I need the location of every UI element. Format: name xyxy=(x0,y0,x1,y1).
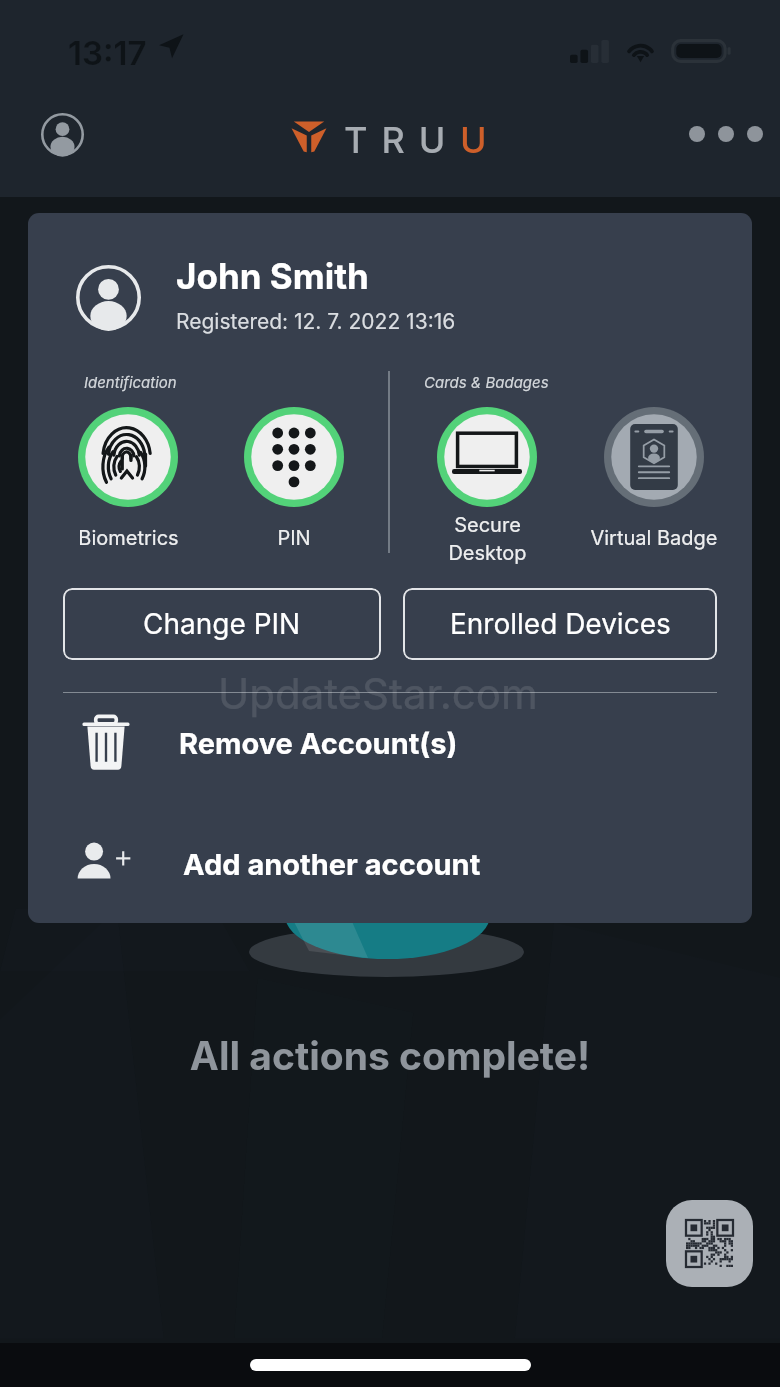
staticText: All actions complete! xyxy=(0,1032,780,1079)
staticText: TRU xyxy=(344,118,460,162)
button[interactable]: Show QR code xyxy=(666,1200,753,1287)
staticText: John Smith xyxy=(176,255,369,297)
staticText: UpdateStar.com xyxy=(218,668,538,719)
staticText: Remove Account(s) xyxy=(179,726,458,761)
button[interactable]: Biometrics xyxy=(40,407,216,569)
staticText: Registered: 12. 7. 2022 13:16 xyxy=(176,309,456,334)
staticText: Cards & Badages xyxy=(424,373,549,391)
staticText: Enrolled Devices xyxy=(450,607,671,641)
staticText: Add another account xyxy=(183,847,481,882)
button[interactable]: Remove Account(s) xyxy=(28,699,752,787)
staticText: Secure Desktop xyxy=(448,513,527,564)
staticText: Identification xyxy=(84,373,177,391)
staticText: PIN xyxy=(277,526,311,550)
button[interactable]: More options xyxy=(684,110,768,158)
staticText: U xyxy=(460,118,487,162)
button[interactable]: PIN xyxy=(206,407,382,569)
button[interactable]: Virtual Badge xyxy=(566,407,742,569)
button[interactable]: Secure Desktop xyxy=(399,407,575,569)
button[interactable]: Enrolled Devices xyxy=(403,588,717,660)
button[interactable]: Account xyxy=(41,113,84,156)
staticText: Biometrics xyxy=(78,526,179,550)
button[interactable]: Add another account xyxy=(28,820,752,908)
button[interactable]: Change PIN xyxy=(63,588,381,660)
staticText: 13:17 xyxy=(68,33,147,73)
staticText: Virtual Badge xyxy=(590,526,718,550)
staticText: Change PIN xyxy=(143,607,301,641)
